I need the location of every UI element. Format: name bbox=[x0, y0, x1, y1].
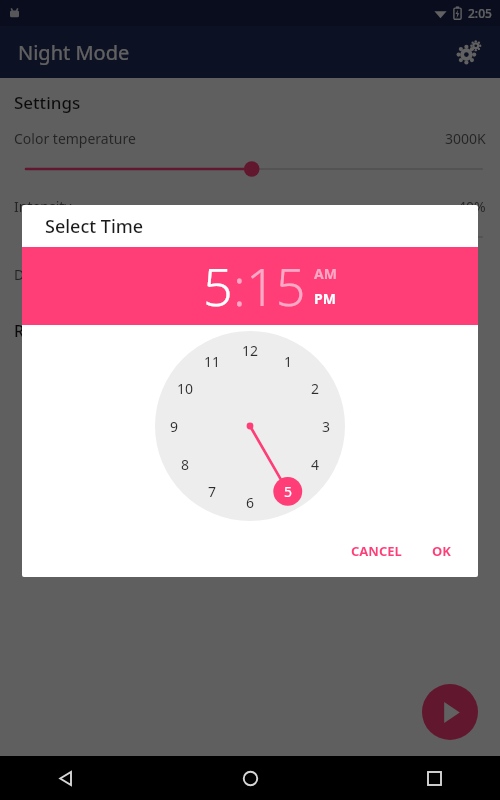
staticText: 5 bbox=[284, 482, 293, 501]
staticText: Settings bbox=[14, 91, 81, 114]
staticText: 1 bbox=[284, 352, 293, 371]
staticText: 8 bbox=[181, 455, 190, 474]
staticText: Night Mode bbox=[18, 39, 130, 66]
button[interactable]: Clock face, 5 o'clock selected bbox=[155, 331, 345, 521]
button[interactable]: AM bbox=[314, 264, 337, 283]
button[interactable]: Color temperature slider bbox=[14, 161, 486, 177]
button[interactable]: Recent apps bbox=[414, 758, 454, 798]
button[interactable]: Home bbox=[230, 758, 270, 798]
staticText: 2 bbox=[311, 379, 320, 398]
button[interactable] bbox=[0, 0, 500, 756]
button[interactable]: CANCEL bbox=[342, 535, 411, 567]
button[interactable]: Start night mode bbox=[422, 684, 478, 740]
staticText: 4 bbox=[311, 455, 320, 474]
button[interactable]: Settings bbox=[448, 31, 490, 73]
staticText: Color temperature bbox=[14, 129, 136, 148]
staticText: OK bbox=[432, 542, 451, 560]
staticText: 3000K bbox=[445, 129, 486, 148]
staticText: 7 bbox=[208, 482, 217, 501]
staticText: 6 bbox=[246, 493, 255, 512]
staticText: CANCEL bbox=[351, 542, 402, 560]
staticText: Select Time bbox=[45, 214, 144, 239]
staticText: Intensity bbox=[14, 197, 72, 216]
button[interactable]: Back bbox=[46, 758, 86, 798]
staticText: 40% bbox=[458, 197, 486, 216]
button[interactable]: 5 bbox=[203, 250, 233, 321]
staticText: 11 bbox=[204, 352, 221, 371]
button[interactable]: Intensity slider bbox=[14, 229, 486, 245]
staticText: Dim screen bbox=[14, 265, 88, 284]
staticText: 9 bbox=[170, 417, 179, 436]
button[interactable]: PM bbox=[314, 289, 336, 308]
staticText: 10 bbox=[177, 379, 194, 398]
staticText: 2:05 bbox=[468, 5, 492, 21]
staticText: 3 bbox=[322, 417, 331, 436]
staticText: Routine bbox=[14, 320, 74, 342]
staticText: : bbox=[233, 250, 246, 321]
button[interactable]: 15 bbox=[246, 250, 306, 321]
button[interactable]: OK bbox=[423, 535, 460, 567]
staticText: 12 bbox=[242, 341, 259, 360]
